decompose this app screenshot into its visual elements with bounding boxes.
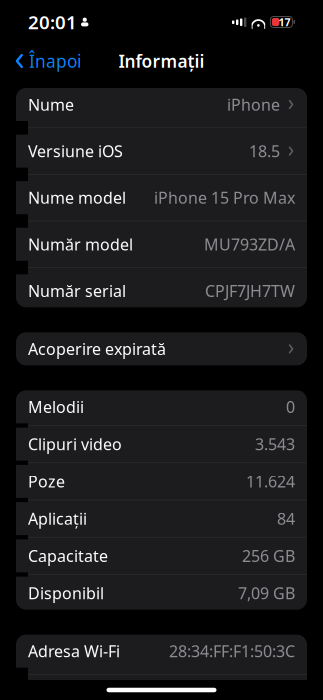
staticText: 256 GB <box>242 545 295 566</box>
button[interactable]: Disponibil <box>16 577 307 610</box>
staticText: Poze <box>28 471 65 492</box>
button[interactable]: Versiune iOS <box>16 135 307 181</box>
staticText: Nume <box>28 94 74 115</box>
staticText: Număr model <box>28 234 133 255</box>
staticText: 28:34:FF:F1:50:3C <box>169 640 295 662</box>
staticText: Informații <box>118 49 204 72</box>
button[interactable]: Nume <box>16 88 307 135</box>
button[interactable]: Clipuri video <box>16 428 307 465</box>
button[interactable]: Nume model <box>16 181 307 228</box>
staticText: iPhone <box>227 94 280 115</box>
staticText: Nume model <box>28 187 126 208</box>
button[interactable]: Număr serial <box>16 274 307 307</box>
button[interactable]: Aplicații <box>16 502 307 539</box>
staticText: CPJF7JH7TW <box>205 280 295 301</box>
button[interactable]: Acoperire expirată <box>16 332 307 365</box>
staticText: 3.543 <box>255 433 295 455</box>
staticText: 11.624 <box>246 471 295 492</box>
staticText: Versiune iOS <box>28 140 123 162</box>
button[interactable]: Bluetooth <box>16 681 307 700</box>
staticText: Număr serial <box>28 280 126 301</box>
staticText: 17 <box>278 15 290 29</box>
staticText: MU793ZD/A <box>204 234 295 255</box>
staticText: 28:34:FF:EA:09:9D <box>165 687 295 700</box>
button[interactable]: Număr model <box>16 228 307 274</box>
button[interactable]: Melodii <box>16 390 307 428</box>
staticText: Aplicații <box>28 508 87 529</box>
staticText: 7,09 GB <box>238 582 295 604</box>
staticText: Adresa Wi-Fi <box>28 640 120 662</box>
staticText: 0 <box>286 396 295 417</box>
staticText: Melodii <box>28 396 84 417</box>
staticText: Înapoi <box>29 49 81 72</box>
button[interactable]: Adresa Wi-Fi <box>16 635 307 681</box>
staticText: 18.5 <box>249 140 280 162</box>
staticText: 84 <box>277 508 295 529</box>
button[interactable]: Capacitate <box>16 539 307 577</box>
button[interactable]: Înapoi <box>4 43 91 78</box>
staticText: Disponibil <box>28 582 104 604</box>
staticText: 20:01 <box>28 10 77 34</box>
staticText: Acoperire expirată <box>28 338 166 359</box>
button[interactable]: Poze <box>16 465 307 502</box>
staticText: iPhone 15 Pro Max <box>154 187 295 208</box>
staticText: Clipuri video <box>28 433 122 455</box>
staticText: Capacitate <box>28 545 108 566</box>
